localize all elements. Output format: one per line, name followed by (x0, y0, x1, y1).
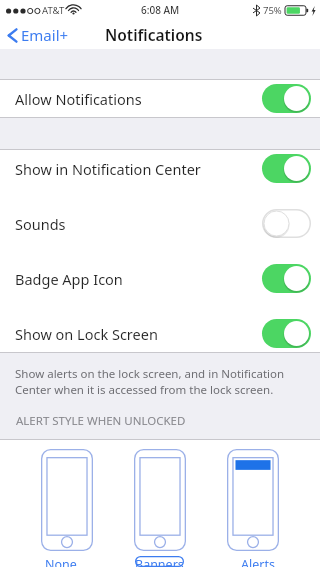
staticText: Badge App Icon (15, 269, 123, 289)
other: Off (262, 209, 311, 238)
staticText: ALERT STYLE WHEN UNLOCKED (16, 413, 186, 429)
button[interactable]: None (35, 554, 87, 569)
other: On (262, 84, 311, 113)
staticText: Sounds (15, 214, 66, 234)
button[interactable]: Sounds (0, 205, 320, 242)
other: On (262, 154, 311, 183)
staticText: 6:08 AM (141, 3, 180, 17)
staticText: Notifications (105, 24, 203, 45)
other: On (262, 319, 311, 348)
button[interactable]: Banners (122, 554, 197, 569)
staticText: 75% (263, 4, 282, 17)
staticText: Banners (135, 556, 184, 567)
button[interactable]: Show on Lock Screen (0, 315, 320, 352)
staticText: None (45, 556, 77, 567)
staticText: Alerts (241, 556, 275, 567)
staticText: Show in Notification Center (15, 159, 201, 179)
staticText: AT&T (42, 4, 65, 17)
staticText: Show alerts on the lock screen, and in N… (15, 366, 285, 397)
button[interactable]: Alerts (231, 554, 285, 569)
staticText: Email+ (21, 25, 69, 45)
button[interactable]: Email+ (0, 22, 79, 48)
staticText: Show on Lock Screen (15, 324, 158, 344)
button[interactable]: Show in Notification Center (0, 150, 320, 187)
button[interactable]: Badge App Icon (0, 260, 320, 297)
other: On (262, 264, 311, 293)
staticText: Allow Notifications (15, 89, 142, 109)
button[interactable]: Allow Notifications (0, 80, 320, 117)
